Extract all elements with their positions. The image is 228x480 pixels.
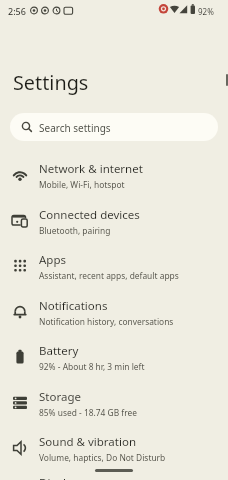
button[interactable]: Search settings	[10, 113, 218, 141]
staticText: Mobile, Wi-Fi, hotspot	[39, 179, 125, 190]
staticText: Display	[39, 475, 79, 480]
button[interactable]: Apps	[0, 243, 228, 289]
staticText: 92% - About 8 hr, 3 min left	[39, 361, 145, 372]
staticText: Volume, haptics, Do Not Disturb	[39, 452, 166, 463]
staticText: Connected devices	[39, 207, 140, 223]
staticText: Settings	[13, 69, 89, 96]
button[interactable]: Sound & vibration	[0, 425, 228, 471]
staticText: Apps	[39, 252, 67, 268]
button[interactable]: Storage	[0, 380, 228, 426]
staticText: 2:56	[8, 5, 26, 17]
staticText: Search settings	[39, 121, 111, 135]
staticText: Network & internet	[39, 161, 143, 177]
button[interactable]: Battery	[0, 334, 228, 380]
button[interactable]: Notifications	[0, 289, 228, 335]
staticText: Sound & vibration	[39, 434, 136, 450]
staticText: Bluetooth, pairing	[39, 225, 111, 236]
staticText: 85% used - 18.74 GB free	[39, 407, 137, 418]
staticText: Assistant, recent apps, default apps	[39, 270, 179, 281]
staticText: Notification history, conversations	[39, 316, 174, 327]
staticText: 92%	[198, 6, 214, 17]
button[interactable]: Network & internet	[0, 152, 228, 198]
button[interactable]: Connected devices	[0, 198, 228, 244]
staticText: Battery	[39, 343, 79, 359]
staticText: Notifications	[39, 298, 108, 314]
staticText: Storage	[39, 389, 81, 405]
